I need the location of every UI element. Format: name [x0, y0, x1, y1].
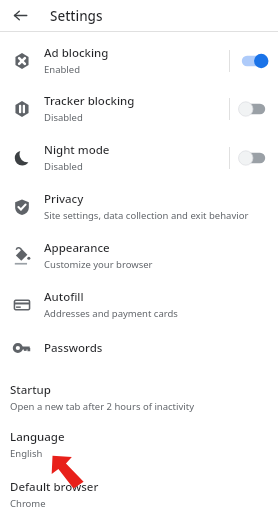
button[interactable]: Night mode	[0, 133, 278, 182]
staticText: Disabled	[44, 160, 83, 173]
button[interactable]: Startup	[0, 378, 278, 416]
staticText: Enabled	[44, 63, 80, 76]
staticText: Startup	[10, 382, 51, 398]
staticText: Addresses and payment cards	[44, 307, 178, 320]
staticText: Night mode	[44, 142, 110, 158]
staticText: Passwords	[44, 340, 103, 356]
staticText: Default browser	[10, 479, 99, 495]
staticText: Language	[10, 429, 65, 445]
staticText: Customize your browser	[44, 258, 153, 271]
button[interactable]: Ad blocking	[0, 37, 278, 84]
button[interactable]	[240, 51, 270, 71]
button[interactable]: Tracker blocking	[0, 84, 278, 133]
button[interactable]	[240, 99, 270, 119]
button[interactable]: Passwords	[0, 329, 278, 367]
staticText: Disabled	[44, 111, 83, 124]
button[interactable]	[240, 148, 270, 168]
staticText: Site settings, data collection and exit …	[44, 209, 249, 222]
staticText: English	[10, 447, 43, 460]
staticText: Tracker blocking	[44, 93, 135, 109]
button[interactable]: Autofill	[0, 280, 278, 329]
staticText: Autofill	[44, 289, 84, 305]
staticText: Open a new tab after 2 hours of inactivi…	[10, 400, 195, 413]
button[interactable]: Default browser	[0, 478, 278, 510]
button[interactable]: Appearance	[0, 231, 278, 280]
staticText: Privacy	[44, 191, 84, 207]
button[interactable]: Back	[0, 0, 40, 31]
button[interactable]: Language	[0, 428, 278, 460]
button[interactable]: Privacy	[0, 182, 278, 231]
staticText: Ad blocking	[44, 45, 109, 61]
staticText: Settings	[50, 7, 103, 25]
staticText: Chrome	[10, 497, 46, 510]
staticText: Appearance	[44, 240, 110, 256]
